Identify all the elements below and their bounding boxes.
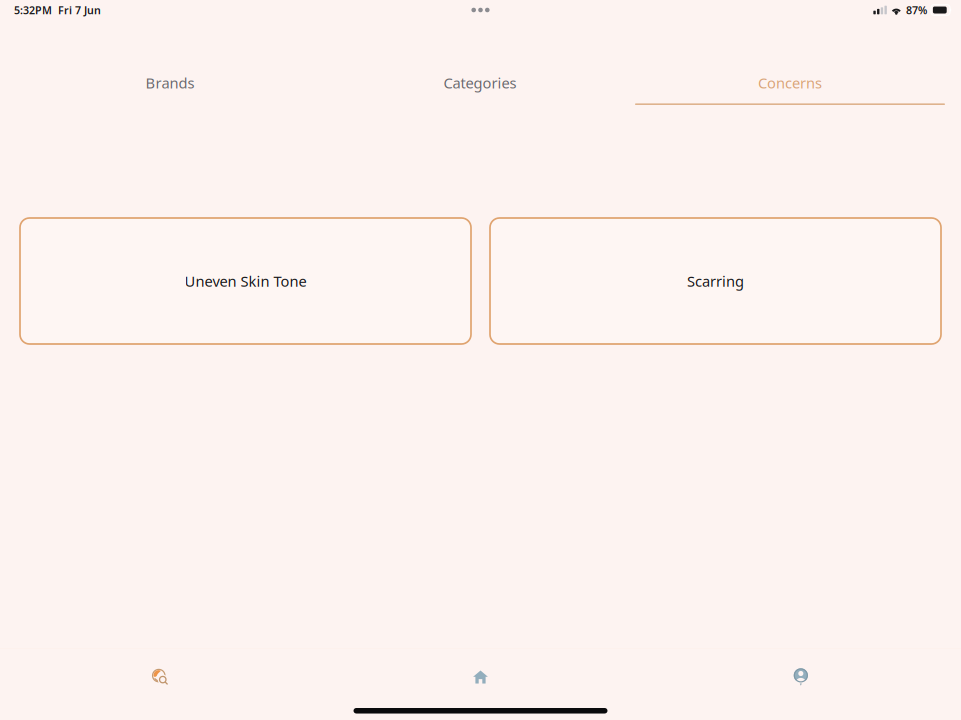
button[interactable]: Brands bbox=[15, 63, 325, 105]
staticText: Categories bbox=[443, 73, 516, 92]
button[interactable]: Home bbox=[320, 649, 641, 705]
staticText: Concerns bbox=[758, 73, 822, 92]
button[interactable]: Uneven Skin Tone bbox=[20, 218, 471, 344]
staticText: 5:32PM bbox=[14, 3, 52, 17]
staticText: Fri 7 Jun bbox=[58, 3, 101, 17]
button[interactable]: Profile bbox=[641, 649, 961, 705]
button[interactable]: Categories bbox=[325, 63, 635, 105]
staticText: 87% bbox=[906, 3, 927, 17]
button[interactable]: Scarring bbox=[490, 218, 941, 344]
staticText: Uneven Skin Tone bbox=[184, 271, 306, 291]
staticText: Brands bbox=[145, 73, 194, 92]
button[interactable]: Concerns bbox=[635, 63, 945, 105]
button[interactable]: Discover bbox=[0, 649, 320, 705]
staticText: Scarring bbox=[687, 271, 744, 291]
